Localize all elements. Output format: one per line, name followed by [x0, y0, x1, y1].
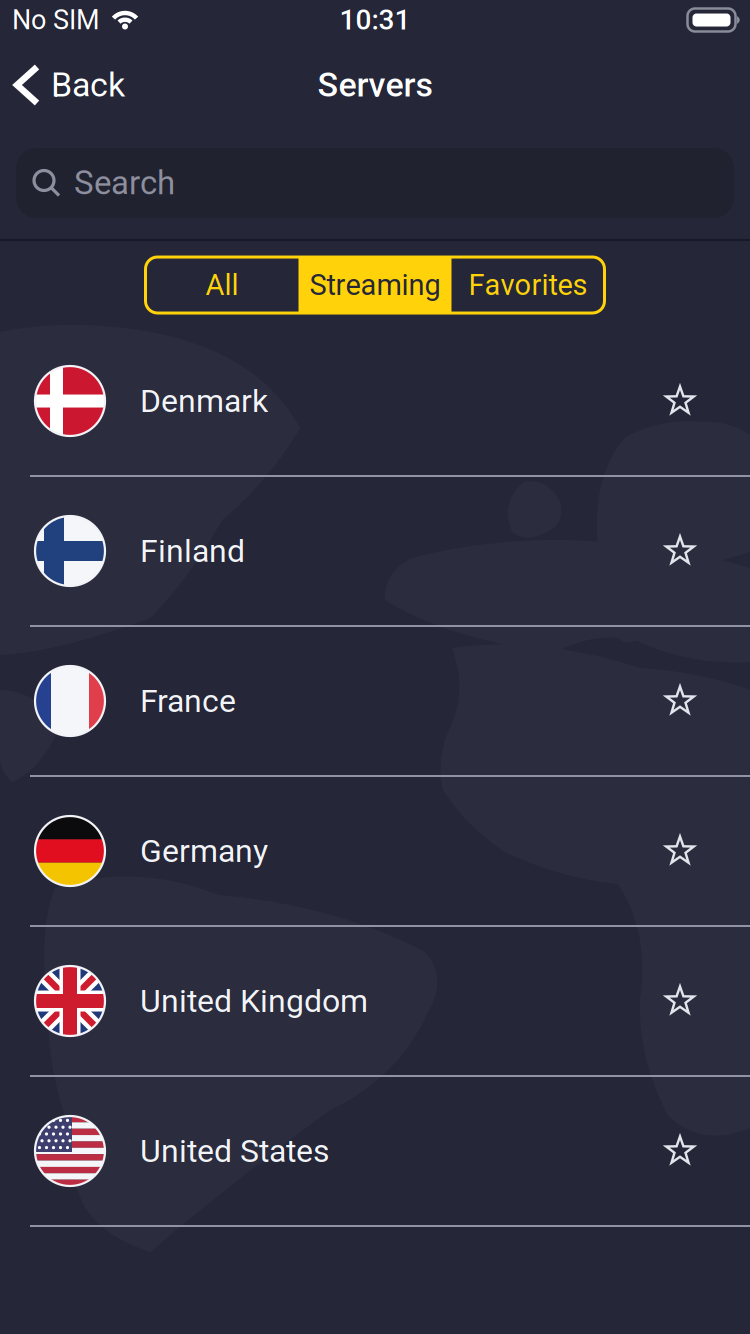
staticText: Search [74, 164, 175, 202]
button[interactable]: Search [16, 148, 734, 218]
staticText: Favorites [468, 268, 587, 302]
staticText: Denmark [140, 382, 268, 420]
button[interactable]: All [145, 257, 298, 313]
button[interactable]: Add France to favorites [665, 685, 695, 717]
button[interactable]: Favorites [451, 257, 604, 313]
staticText: Germany [140, 832, 268, 870]
staticText: 10:31 [339, 4, 410, 36]
staticText: United Kingdom [140, 982, 368, 1020]
staticText: No SIM [12, 4, 100, 36]
staticText: Servers [317, 65, 432, 105]
button[interactable]: Streaming [298, 257, 451, 313]
button[interactable]: United States [0, 1077, 750, 1225]
staticText: Finland [140, 532, 245, 570]
button[interactable]: Finland [0, 477, 750, 625]
button[interactable]: Add Germany to favorites [665, 835, 695, 867]
staticText: Back [51, 65, 125, 105]
button[interactable]: Add Denmark to favorites [665, 385, 695, 417]
staticText: United States [140, 1132, 330, 1170]
staticText: France [140, 682, 236, 720]
staticText: Streaming [309, 268, 440, 302]
staticText: All [205, 268, 238, 302]
button[interactable]: Germany [0, 777, 750, 925]
button[interactable]: Add United Kingdom to favorites [665, 985, 695, 1017]
button[interactable]: United Kingdom [0, 927, 750, 1075]
button[interactable]: Denmark [0, 327, 750, 475]
button[interactable]: Add Finland to favorites [665, 535, 695, 567]
button[interactable]: Add United States to favorites [665, 1135, 695, 1167]
button[interactable]: France [0, 627, 750, 775]
button[interactable]: Back [12, 64, 125, 106]
